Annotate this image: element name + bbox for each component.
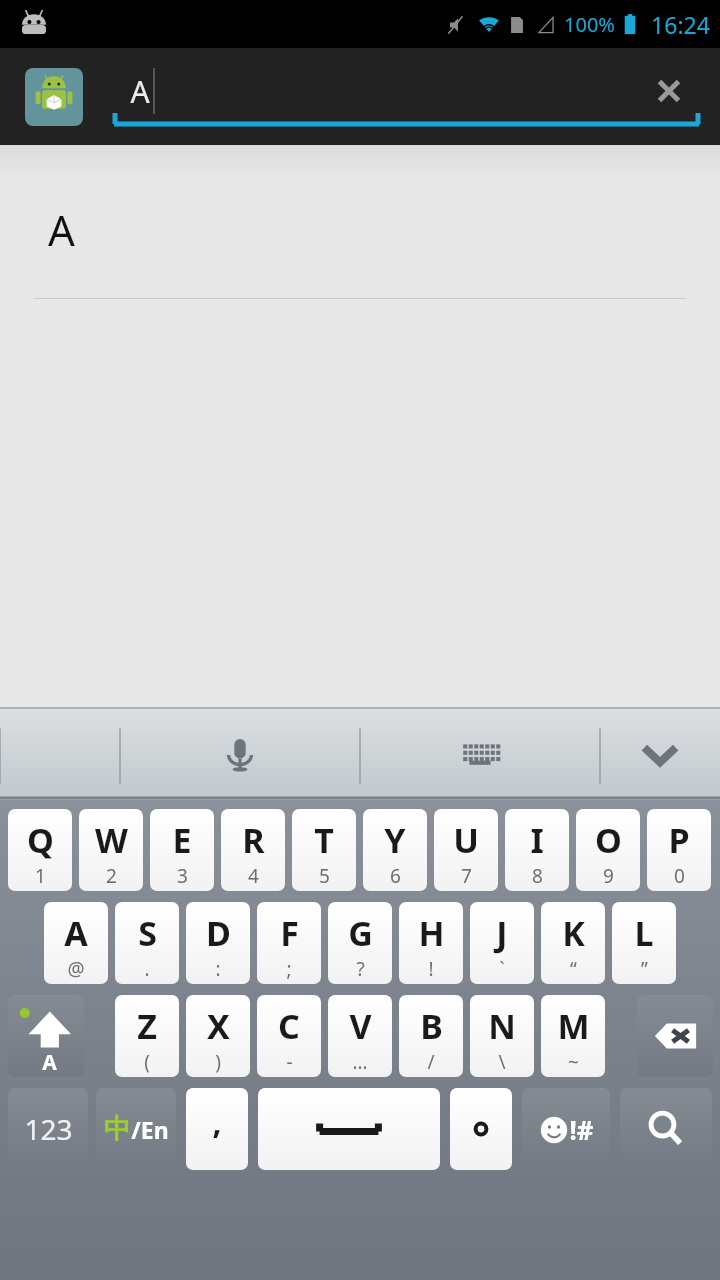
- button[interactable]: J: [470, 902, 534, 984]
- button[interactable]: B: [399, 995, 463, 1077]
- button[interactable]: Symbols: [522, 1088, 610, 1170]
- button[interactable]: L: [612, 902, 676, 984]
- button[interactable]: H: [399, 902, 463, 984]
- staticText: @: [67, 956, 85, 982]
- staticText: “: [570, 956, 577, 982]
- staticText: (: [144, 1049, 150, 1075]
- staticText: A: [48, 201, 75, 258]
- staticText: U: [453, 817, 479, 863]
- staticText: G: [348, 910, 373, 956]
- button[interactable]: E: [150, 809, 214, 891]
- button[interactable]: F: [257, 902, 321, 984]
- staticText: S: [138, 910, 157, 956]
- staticText: Y: [384, 817, 406, 863]
- staticText: :: [215, 956, 221, 982]
- button[interactable]: G: [328, 902, 392, 984]
- staticText: V: [349, 1003, 372, 1049]
- button[interactable]: A: [44, 902, 108, 984]
- button[interactable]: Search: [620, 1088, 712, 1170]
- staticText: P: [668, 817, 690, 863]
- staticText: X: [207, 1003, 230, 1049]
- staticText: !: [428, 956, 434, 982]
- staticText: 6: [390, 863, 401, 889]
- staticText: 8: [532, 863, 543, 889]
- button[interactable]: Clear search: [640, 62, 698, 120]
- button[interactable]: V: [328, 995, 392, 1077]
- button[interactable]: R: [221, 809, 285, 891]
- staticText: 100%: [564, 11, 615, 38]
- staticText: \: [498, 1049, 506, 1075]
- staticText: 2: [106, 863, 117, 889]
- button[interactable]: K: [541, 902, 605, 984]
- button[interactable]: X: [186, 995, 250, 1077]
- staticText: T: [314, 817, 334, 863]
- staticText: 7: [461, 863, 472, 889]
- button[interactable]: U: [434, 809, 498, 891]
- staticText: ”: [641, 956, 648, 982]
- staticText: Q: [27, 817, 54, 863]
- button[interactable]: App icon: [25, 68, 83, 126]
- button[interactable]: M: [541, 995, 605, 1077]
- staticText: -: [286, 1049, 293, 1075]
- button[interactable]: Period: [450, 1088, 512, 1170]
- staticText: 16:24: [651, 9, 710, 40]
- staticText: `: [499, 956, 505, 982]
- button[interactable]: D: [186, 902, 250, 984]
- staticText: 123: [24, 1110, 73, 1148]
- staticText: 0: [674, 863, 685, 889]
- staticText: E: [172, 817, 192, 863]
- button[interactable]: Z: [115, 995, 179, 1077]
- button[interactable]: Switch keyboard: [445, 708, 515, 800]
- button[interactable]: I: [505, 809, 569, 891]
- button[interactable]: N: [470, 995, 534, 1077]
- staticText: …: [352, 1049, 368, 1075]
- staticText: W: [95, 817, 128, 863]
- staticText: 1: [35, 863, 46, 889]
- staticText: D: [206, 910, 231, 956]
- staticText: ): [215, 1049, 221, 1075]
- staticText: O: [595, 817, 622, 863]
- staticText: ;: [286, 956, 292, 982]
- button[interactable]: Comma: [186, 1088, 248, 1170]
- button[interactable]: W: [79, 809, 143, 891]
- staticText: A: [42, 1048, 57, 1077]
- staticText: L: [634, 910, 654, 956]
- button[interactable]: S: [115, 902, 179, 984]
- button[interactable]: Q: [8, 809, 72, 891]
- staticText: 5: [319, 863, 330, 889]
- button[interactable]: Switch language: [96, 1088, 176, 1170]
- button[interactable]: T: [292, 809, 356, 891]
- staticText: A: [130, 71, 150, 112]
- staticText: !#: [569, 1112, 594, 1147]
- staticText: ~: [568, 1049, 579, 1075]
- staticText: 4: [248, 863, 259, 889]
- staticText: ?: [356, 956, 365, 982]
- button[interactable]: Y: [363, 809, 427, 891]
- staticText: A: [64, 910, 88, 956]
- staticText: M: [557, 1003, 590, 1049]
- button[interactable]: P: [647, 809, 711, 891]
- staticText: 9: [603, 863, 614, 889]
- staticText: J: [496, 910, 508, 956]
- staticText: H: [418, 910, 445, 956]
- button[interactable]: Numbers: [8, 1088, 88, 1170]
- staticText: 3: [177, 863, 188, 889]
- staticText: R: [242, 817, 265, 863]
- staticText: I: [530, 817, 544, 863]
- button[interactable]: Shift: [8, 995, 84, 1077]
- staticText: .: [144, 956, 150, 982]
- staticText: B: [420, 1003, 443, 1049]
- staticText: ,: [212, 1100, 222, 1144]
- button[interactable]: O: [576, 809, 640, 891]
- staticText: C: [278, 1003, 300, 1049]
- staticText: 中: [104, 1112, 131, 1146]
- staticText: /: [427, 1049, 435, 1075]
- button[interactable]: Voice input: [205, 708, 275, 800]
- staticText: F: [280, 910, 299, 956]
- staticText: /En: [131, 1114, 169, 1145]
- button[interactable]: Backspace: [637, 995, 713, 1077]
- button[interactable]: Space: [258, 1088, 440, 1170]
- staticText: N: [488, 1003, 516, 1049]
- button[interactable]: Hide keyboard: [625, 708, 695, 800]
- button[interactable]: C: [257, 995, 321, 1077]
